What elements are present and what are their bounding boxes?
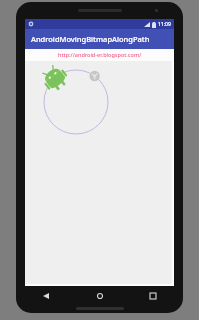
button[interactable]: Home [94,290,106,302]
staticText: 11:09 [158,21,171,28]
button[interactable]: AndroidMovingBitmapAlongPath [25,29,174,49]
button[interactable]: Back [40,290,52,302]
button[interactable]: http://android-er.blogspot.com/ [58,51,142,58]
staticText: AndroidMovingBitmapAlongPath [31,34,150,44]
button[interactable]: Recent apps [147,290,159,302]
